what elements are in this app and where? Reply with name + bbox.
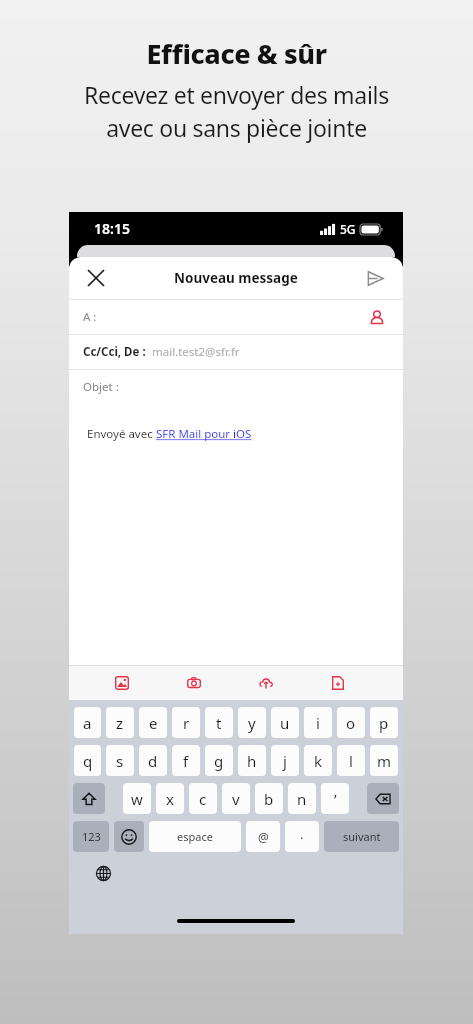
staticText: ’: [334, 789, 337, 809]
staticText: @: [258, 829, 269, 845]
button[interactable]: x: [156, 783, 184, 814]
staticText: i: [316, 713, 320, 733]
staticText: j: [283, 751, 287, 771]
button[interactable]: espace: [149, 821, 241, 852]
button[interactable]: d: [139, 745, 167, 776]
button[interactable]: y: [238, 707, 266, 738]
button[interactable]: a: [74, 707, 101, 738]
staticText: Cc/Cci, De :: [83, 344, 146, 360]
staticText: mail.test2@sfr.fr: [152, 344, 240, 360]
button[interactable]: g: [205, 745, 233, 776]
staticText: Envoyé avec: [87, 426, 156, 442]
button[interactable]: t: [205, 707, 233, 738]
button[interactable]: v: [222, 783, 250, 814]
button[interactable]: s: [106, 745, 134, 776]
button[interactable]: o: [337, 707, 365, 738]
staticText: .: [300, 825, 304, 843]
staticText: q: [83, 751, 93, 771]
staticText: s: [116, 751, 124, 771]
button[interactable]: Changer de clavier: [91, 861, 115, 885]
button[interactable]: Joindre un fichier: [323, 668, 353, 698]
button[interactable]: suivant: [324, 821, 399, 852]
staticText: d: [148, 751, 158, 771]
staticText: b: [264, 789, 274, 809]
button[interactable]: q: [74, 745, 101, 776]
staticText: espace: [177, 829, 213, 844]
staticText: w: [131, 789, 143, 809]
staticText: 18:15: [94, 219, 130, 238]
button[interactable]: u: [271, 707, 299, 738]
button[interactable]: Ajouter un contact: [363, 303, 391, 331]
button[interactable]: @: [246, 821, 280, 852]
staticText: suivant: [343, 829, 381, 844]
staticText: 5G: [340, 221, 356, 237]
staticText: v: [232, 789, 240, 809]
staticText: u: [280, 713, 290, 733]
staticText: c: [199, 789, 207, 809]
staticText: m: [377, 751, 392, 771]
staticText: e: [149, 713, 158, 733]
staticText: g: [214, 751, 224, 771]
button[interactable]: Emoji: [114, 821, 144, 852]
staticText: r: [183, 713, 190, 733]
button[interactable]: A :: [69, 299, 403, 334]
staticText: y: [248, 713, 256, 733]
button[interactable]: Depuis le cloud: [251, 668, 281, 698]
button[interactable]: m: [370, 745, 398, 776]
staticText: k: [314, 751, 323, 771]
button[interactable]: j: [271, 745, 299, 776]
button[interactable]: Insérer une image: [107, 668, 137, 698]
button[interactable]: Objet :: [69, 369, 403, 404]
staticText: x: [166, 789, 174, 809]
staticText: Objet :: [83, 379, 119, 395]
button[interactable]: .: [285, 821, 319, 852]
button[interactable]: n: [288, 783, 316, 814]
button[interactable]: Fermer: [79, 261, 113, 295]
button[interactable]: Envoyé avec: [87, 426, 403, 442]
button[interactable]: l: [337, 745, 365, 776]
staticText: SFR Mail pour iOS: [156, 426, 252, 442]
button[interactable]: e: [139, 707, 167, 738]
button[interactable]: k: [304, 745, 332, 776]
button[interactable]: Cc/Cci, De :: [69, 334, 403, 369]
button[interactable]: Supprimer: [367, 783, 399, 814]
button[interactable]: i: [304, 707, 332, 738]
staticText: z: [116, 713, 124, 733]
staticText: o: [346, 713, 356, 733]
button[interactable]: ’: [321, 783, 349, 814]
staticText: t: [216, 713, 222, 733]
button[interactable]: 123: [73, 821, 109, 852]
button[interactable]: w: [123, 783, 151, 814]
staticText: a: [83, 713, 92, 733]
button[interactable]: Envoyer: [358, 261, 392, 295]
staticText: f: [183, 751, 189, 771]
button[interactable]: c: [189, 783, 217, 814]
button[interactable]: b: [255, 783, 283, 814]
staticText: 123: [82, 829, 101, 844]
staticText: A :: [83, 309, 97, 325]
button[interactable]: p: [370, 707, 398, 738]
staticText: h: [247, 751, 257, 771]
staticText: avec ou sans pièce jointe: [106, 112, 367, 143]
staticText: Efficace & sûr: [146, 35, 327, 72]
staticText: p: [379, 713, 389, 733]
staticText: Nouveau message: [174, 269, 298, 287]
button[interactable]: Majuscule: [73, 783, 105, 814]
button[interactable]: z: [106, 707, 134, 738]
button[interactable]: r: [172, 707, 200, 738]
staticText: Recevez et envoyer des mails: [84, 79, 389, 110]
staticText: n: [297, 789, 307, 809]
button[interactable]: h: [238, 745, 266, 776]
staticText: l: [349, 751, 353, 771]
button[interactable]: f: [172, 745, 200, 776]
button[interactable]: Prendre une photo: [179, 668, 209, 698]
